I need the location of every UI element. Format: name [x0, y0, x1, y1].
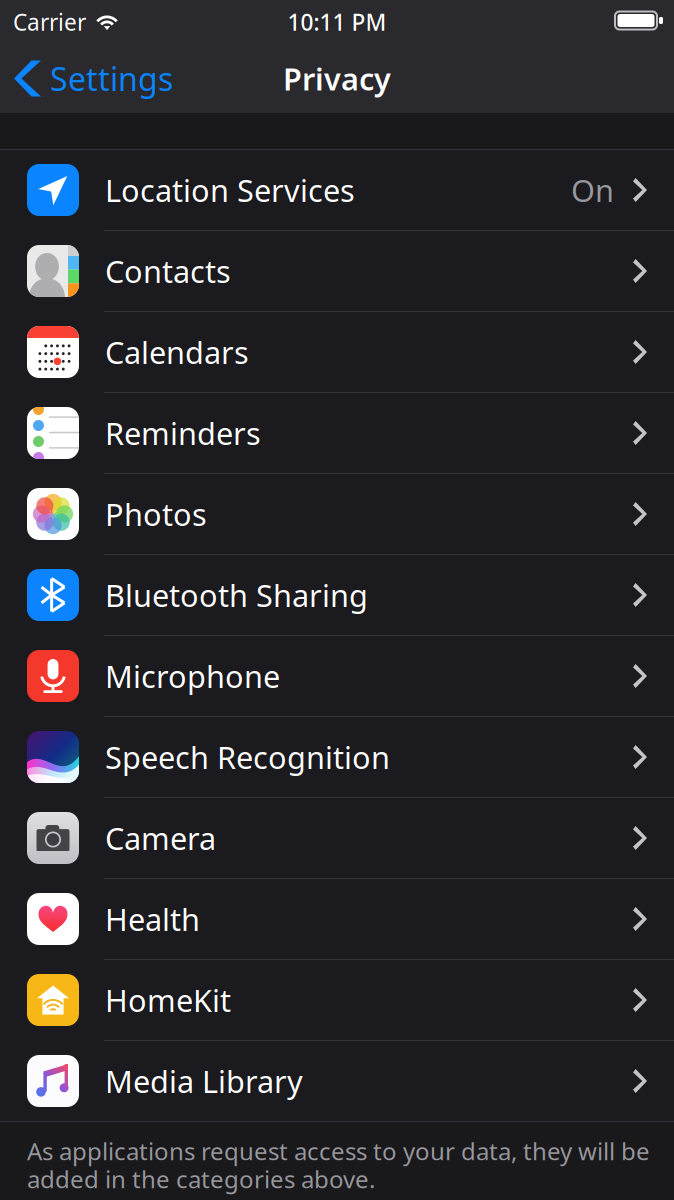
button[interactable]: Camera	[0, 798, 674, 879]
staticText: Media Library	[105, 1061, 303, 1101]
staticText: Bluetooth Sharing	[105, 575, 368, 615]
button[interactable]: HomeKit	[0, 960, 674, 1041]
button[interactable]: Location Services	[0, 150, 674, 231]
staticText: Contacts	[105, 251, 231, 291]
button[interactable]: Media Library	[0, 1041, 674, 1122]
staticText: Settings	[50, 57, 173, 100]
staticText: Speech Recognition	[105, 737, 390, 777]
button[interactable]: Health	[0, 879, 674, 960]
staticText: Photos	[105, 494, 207, 534]
button[interactable]: Contacts	[0, 231, 674, 312]
staticText: Health	[105, 899, 200, 939]
button[interactable]: Settings	[0, 44, 187, 113]
staticText: Privacy	[283, 58, 391, 99]
staticText: Location Services	[105, 170, 355, 210]
button[interactable]: Reminders	[0, 393, 674, 474]
staticText: Calendars	[105, 332, 249, 372]
staticText: Reminders	[105, 413, 261, 453]
button[interactable]: Bluetooth Sharing	[0, 555, 674, 636]
button[interactable]: Speech Recognition	[0, 717, 674, 798]
staticText: 10:11 PM	[287, 7, 386, 37]
button[interactable]: Microphone	[0, 636, 674, 717]
staticText: Carrier	[13, 7, 86, 37]
staticText: Camera	[105, 818, 216, 858]
staticText: added in the categories above.	[27, 1163, 375, 1195]
button[interactable]: Calendars	[0, 312, 674, 393]
staticText: HomeKit	[105, 980, 231, 1020]
staticText: On	[571, 170, 614, 210]
staticText: As applications request access to your d…	[27, 1135, 650, 1167]
staticText: Microphone	[105, 656, 280, 696]
button[interactable]: Photos	[0, 474, 674, 555]
